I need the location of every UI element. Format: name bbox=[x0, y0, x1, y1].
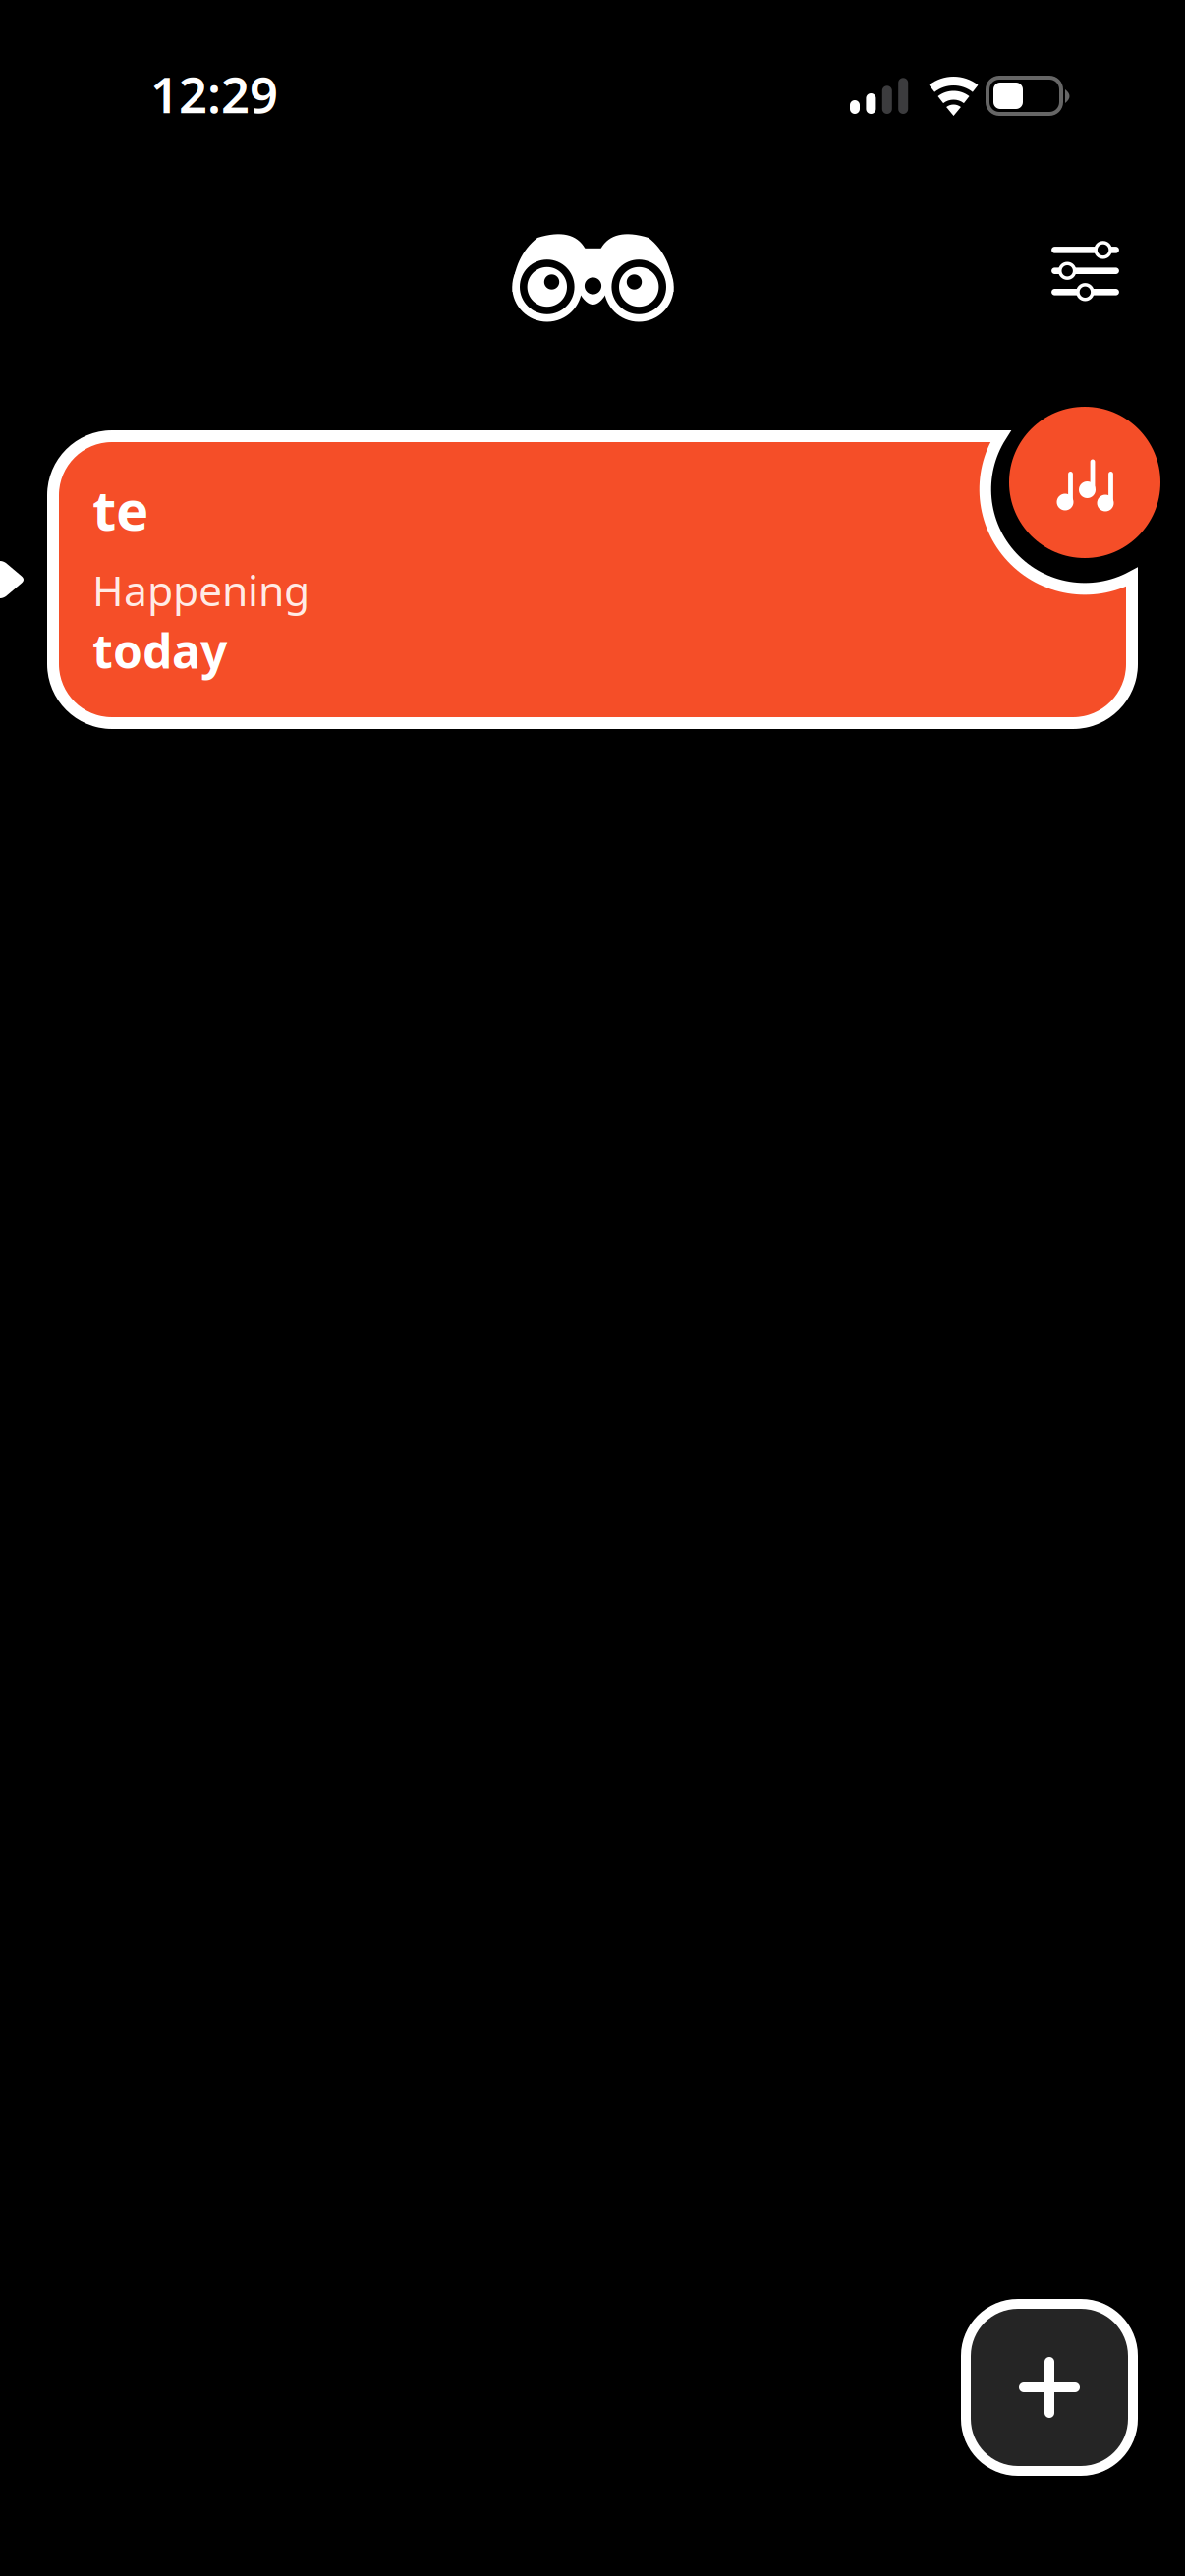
staticText: 12:29 bbox=[150, 61, 278, 127]
staticText: te bbox=[92, 473, 148, 546]
staticText: today bbox=[92, 619, 227, 682]
button[interactable]: Filters bbox=[1022, 211, 1149, 330]
button[interactable]: Scuttle bbox=[488, 207, 698, 349]
button[interactable]: te bbox=[53, 436, 1132, 723]
button[interactable]: Add bbox=[961, 2299, 1138, 2476]
staticText: Happening bbox=[92, 562, 310, 618]
button[interactable]: Music bbox=[1009, 407, 1160, 558]
